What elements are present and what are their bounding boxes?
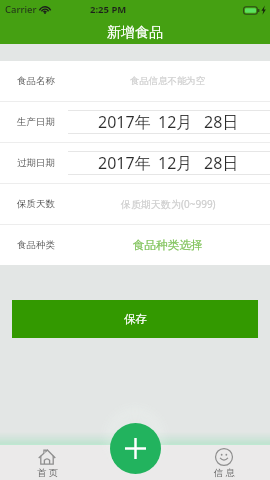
button[interactable]: 保存 [12,300,258,338]
staticText: 信 息 [214,466,235,479]
staticText: Carrier [5,3,37,16]
staticText: 食品名称 [17,75,55,87]
staticText: 2017年 [98,111,151,133]
staticText: 食品种类 [17,239,55,251]
button[interactable]: Add [110,423,161,474]
staticText: 首 页 [37,466,58,479]
staticText: 28日 [204,152,239,174]
staticText: 过期日期 [17,157,55,169]
staticText: 28日 [204,111,239,133]
staticText: 食品信息不能为空 [130,75,206,87]
button[interactable]: 首 页 [22,445,72,479]
staticText: 保存 [124,312,147,326]
button[interactable]: 食品名称 [0,61,270,101]
staticText: 食品种类选择 [133,238,203,253]
button[interactable]: 保质天数 [0,184,270,224]
staticText: 保质天数 [17,198,55,210]
staticText: 12月 [158,152,193,174]
staticText: 保质期天数为(0~999) [121,197,216,211]
staticText: 2017年 [98,152,151,174]
staticText: 新增食品 [107,24,163,42]
staticText: 2:25 PM [90,3,127,16]
button[interactable]: 生产日期 [0,102,270,142]
button[interactable]: 过期日期 [0,143,270,183]
staticText: 生产日期 [17,116,55,128]
button[interactable]: 食品种类 [0,225,270,265]
staticText: 12月 [158,111,193,133]
button[interactable]: 信 息 [199,445,249,479]
